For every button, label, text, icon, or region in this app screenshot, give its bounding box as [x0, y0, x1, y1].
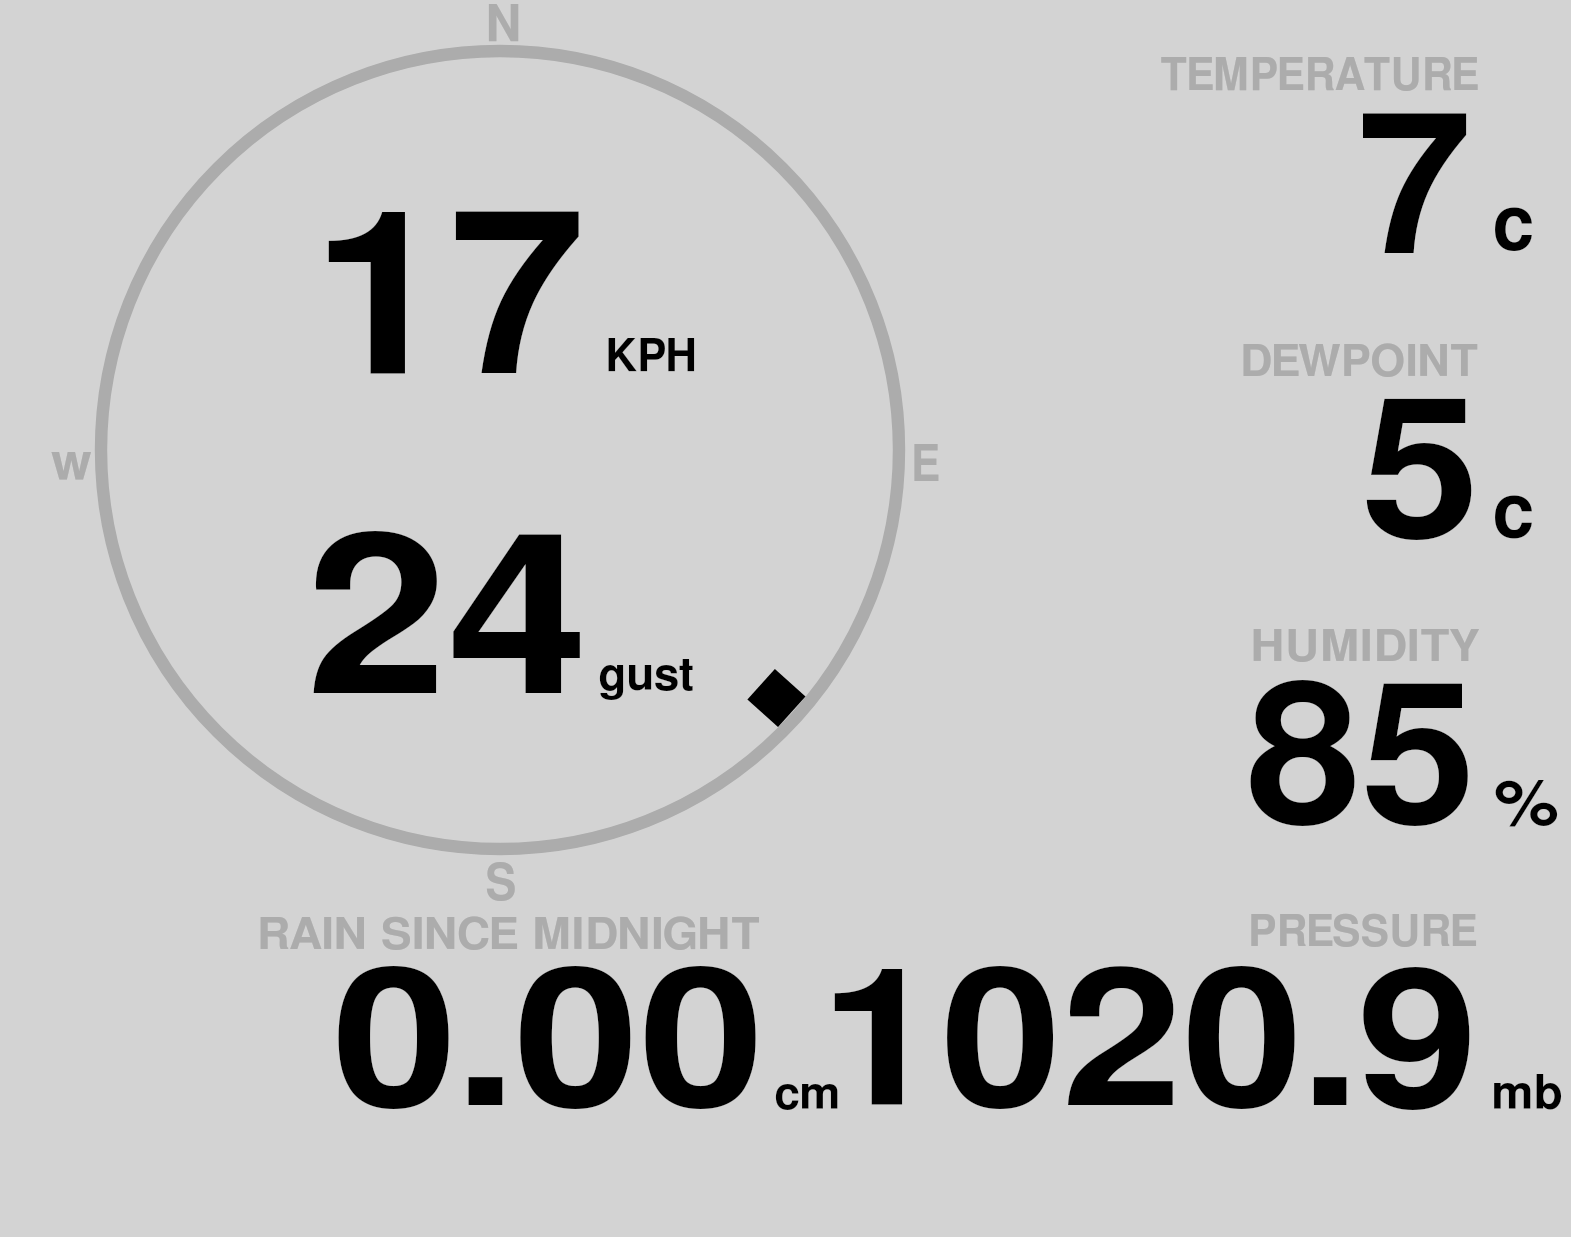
button[interactable]: Dewpoint 5 degrees Celsius	[1150, 330, 1562, 550]
staticText: S	[485, 860, 517, 910]
staticText: cm	[774, 1073, 841, 1118]
staticText: N	[485, 1, 522, 51]
staticText: 24	[306, 514, 590, 738]
staticText: KPH	[605, 335, 698, 380]
staticText: 1020.9	[820, 951, 1479, 1143]
staticText: gust	[598, 653, 694, 699]
staticText: 7	[1357, 95, 1472, 292]
staticText: TEMPERATURE	[1160, 54, 1480, 99]
staticText: c	[1492, 188, 1535, 264]
staticText: mb	[1491, 1071, 1563, 1118]
staticText: PRESSURE	[1248, 912, 1478, 955]
button[interactable]: Rain since midnight 0.00 centimetres	[250, 902, 850, 1118]
staticText: 5	[1361, 382, 1480, 575]
staticText: 0.00	[332, 951, 765, 1143]
button[interactable]: Humidity 85 percent	[1150, 616, 1562, 838]
staticText: c	[1492, 476, 1534, 551]
staticText: 85	[1246, 666, 1476, 861]
staticText: E	[911, 441, 941, 491]
staticText: HUMIDITY	[1250, 626, 1480, 670]
staticText: RAIN SINCE MIDNIGHT	[257, 914, 760, 958]
staticText: DEWPOINT	[1240, 341, 1478, 384]
staticText: w	[51, 440, 92, 490]
button[interactable]: Pressure 1020.9 millibars	[850, 902, 1565, 1118]
button[interactable]: Temperature 7 degrees Celsius	[1150, 44, 1562, 264]
staticText: %	[1494, 774, 1559, 838]
button[interactable]: Wind 17 kilometres per hour, gusting 24,…	[98, 48, 902, 852]
staticText: 17	[312, 191, 586, 418]
